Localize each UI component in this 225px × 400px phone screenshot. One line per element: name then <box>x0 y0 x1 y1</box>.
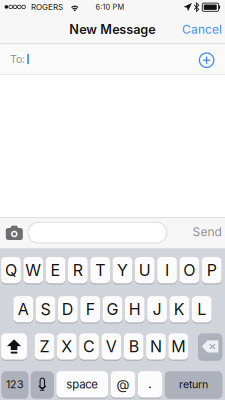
staticText: To: <box>10 53 25 66</box>
staticText: Y <box>117 260 128 280</box>
button[interactable]: L <box>192 295 211 324</box>
staticText: L <box>197 300 206 319</box>
staticText: B <box>129 337 139 356</box>
button[interactable]: P <box>202 256 221 284</box>
staticText: return <box>179 378 208 391</box>
button[interactable]: . <box>138 370 162 399</box>
button[interactable]: F <box>80 295 100 324</box>
button[interactable]: Cancel <box>176 16 225 43</box>
staticText: O <box>183 260 195 280</box>
button[interactable]: M <box>168 332 188 361</box>
button[interactable]: Take photo <box>3 223 26 243</box>
button[interactable]: Send <box>186 219 225 245</box>
staticText: G <box>106 300 118 319</box>
staticText: @ <box>116 376 129 392</box>
button[interactable]: space <box>56 370 108 399</box>
staticText: Z <box>39 337 49 356</box>
button[interactable]: I <box>157 256 177 284</box>
staticText: Send <box>192 225 221 239</box>
staticText: ROGERS <box>31 2 63 12</box>
staticText: D <box>62 300 74 319</box>
button[interactable]: A <box>13 295 33 324</box>
staticText: I <box>165 260 169 280</box>
button[interactable]: Y <box>113 256 132 284</box>
button[interactable]: N <box>146 332 166 361</box>
staticText: 6:10 PM <box>95 3 124 12</box>
button[interactable]: H <box>125 295 145 324</box>
button[interactable]: E <box>46 256 65 284</box>
staticText: space <box>66 377 98 391</box>
staticText: R <box>73 260 83 280</box>
button[interactable]: Add contact <box>195 49 218 71</box>
staticText: W <box>25 260 41 280</box>
button[interactable]: V <box>101 332 121 361</box>
staticText: U <box>139 260 151 280</box>
button[interactable]: U <box>135 256 155 284</box>
button[interactable]: C <box>79 332 99 361</box>
button[interactable]: O <box>179 256 199 284</box>
staticText: J <box>153 300 162 319</box>
staticText: M <box>171 337 185 356</box>
staticText: . <box>148 375 152 391</box>
staticText: X <box>61 337 72 356</box>
button[interactable]: 123 <box>1 370 28 399</box>
staticText: S <box>41 300 51 319</box>
staticText: Q <box>5 260 17 280</box>
button[interactable]: Delete <box>198 332 222 361</box>
staticText: A <box>18 300 29 319</box>
button[interactable]: K <box>169 295 189 324</box>
button[interactable]: Shift <box>1 332 27 361</box>
button[interactable]: T <box>90 256 110 284</box>
staticText: N <box>150 337 162 356</box>
staticText: T <box>95 260 105 280</box>
button[interactable]: B <box>124 332 143 361</box>
staticText: 123 <box>6 378 24 391</box>
staticText: Cancel <box>182 22 222 37</box>
staticText: K <box>174 300 185 319</box>
button[interactable]: X <box>57 332 77 361</box>
button[interactable]: Q <box>1 256 21 284</box>
staticText: New Message <box>69 22 155 37</box>
button[interactable]: @ <box>111 370 135 399</box>
staticText: E <box>51 260 61 280</box>
button[interactable]: Dictation <box>31 370 54 399</box>
button[interactable]: R <box>68 256 88 284</box>
button[interactable]: G <box>103 295 122 324</box>
button[interactable]: J <box>147 295 167 324</box>
button[interactable]: return <box>165 370 222 399</box>
button[interactable]: Z <box>35 332 54 361</box>
button[interactable]: S <box>36 295 55 324</box>
staticText: C <box>83 337 95 356</box>
staticText: P <box>207 260 217 280</box>
button[interactable]: W <box>23 256 43 284</box>
staticText: H <box>129 300 141 319</box>
staticText: V <box>106 337 117 356</box>
button[interactable]: D <box>58 295 78 324</box>
staticText: F <box>86 300 95 319</box>
